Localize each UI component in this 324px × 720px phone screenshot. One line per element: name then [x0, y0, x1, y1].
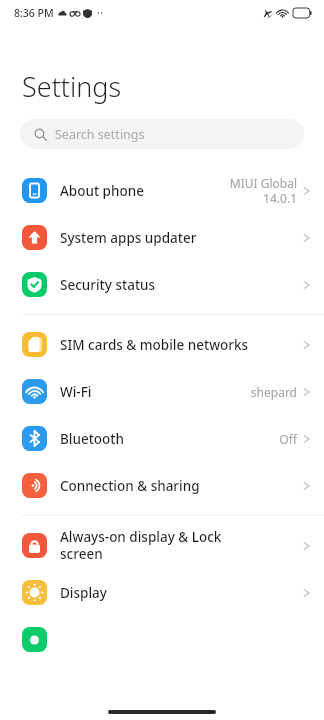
staticText: Display [60, 584, 301, 602]
staticText: Bluetooth [60, 430, 279, 448]
button[interactable]: Search settings [20, 119, 304, 149]
staticText: Connection & sharing [60, 477, 301, 495]
staticText: System apps updater [60, 229, 301, 247]
staticText: Wi-Fi [60, 383, 250, 401]
staticText: 8:36 PM [14, 6, 54, 20]
button[interactable]: Display [0, 569, 324, 616]
staticText: shepard [250, 384, 297, 400]
button[interactable]: About phone [0, 167, 324, 214]
button[interactable]: Always-on display & Lock screen [0, 522, 324, 569]
staticText: About phone [60, 182, 229, 200]
button[interactable]: Wi-Fi [0, 368, 324, 415]
staticText: Security status [60, 276, 301, 294]
button[interactable]: Connection & sharing [0, 462, 324, 509]
button[interactable]: Bluetooth [0, 415, 324, 462]
staticText: SIM cards & mobile networks [60, 336, 301, 354]
staticText: Settings [22, 68, 122, 105]
staticText: MIUI Global 14.0.1 [229, 175, 297, 206]
staticText: Off [279, 431, 297, 447]
staticText: Always-on display & Lock screen [60, 528, 301, 563]
staticText: Search settings [55, 126, 145, 143]
button[interactable]: SIM cards & mobile networks [0, 321, 324, 368]
button[interactable]: Security status [0, 261, 324, 308]
button[interactable]: System apps updater [0, 214, 324, 261]
button[interactable] [0, 616, 324, 663]
